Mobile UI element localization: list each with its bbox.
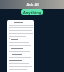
button[interactable] xyxy=(7,20,34,72)
staticText: Anything xyxy=(23,10,42,15)
staticText: Ask AI xyxy=(26,2,39,7)
button[interactable]: Anything xyxy=(21,9,43,15)
button[interactable]: Ask AI xyxy=(0,0,64,9)
